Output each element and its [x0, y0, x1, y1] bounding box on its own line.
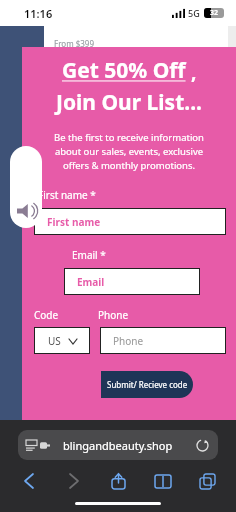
button[interactable]: Phone — [101, 328, 225, 353]
staticText: Get 50% Off — [62, 56, 186, 85]
button[interactable]: Email — [65, 269, 199, 294]
staticText: US — [48, 334, 61, 348]
staticText: Be the first to receive information abou… — [48, 131, 210, 172]
button[interactable]: Tabs — [194, 468, 220, 494]
button[interactable]: First name — [35, 209, 225, 234]
staticText: Phone — [113, 334, 144, 348]
staticText: Email * — [72, 248, 106, 262]
staticText: Join Our List... — [56, 88, 202, 117]
staticText: Email — [77, 275, 105, 289]
staticText: , — [186, 59, 197, 85]
button[interactable]: Share — [105, 468, 131, 494]
staticText: 5G — [188, 7, 200, 19]
button[interactable]: Back — [16, 468, 42, 494]
staticText: Phone — [98, 308, 129, 322]
staticText: 11:16 — [24, 6, 53, 21]
other: Page settings — [26, 440, 37, 451]
staticText: Code — [34, 308, 98, 322]
button[interactable]: Sound — [10, 146, 42, 228]
staticText: First name * — [38, 188, 96, 202]
staticText: blingandbeauty.shop — [63, 438, 173, 453]
button[interactable]: Reload — [194, 437, 210, 453]
staticText: First name — [47, 215, 101, 229]
button[interactable]: Forward — [61, 468, 87, 494]
button[interactable]: Bookmarks — [150, 468, 176, 494]
button[interactable]: blingandbeauty.shop — [18, 430, 218, 460]
staticText: 32 — [210, 8, 219, 18]
staticText: Submit/ Recieve code — [107, 379, 188, 390]
staticText: From $399 — [54, 38, 94, 49]
button[interactable]: US — [35, 328, 89, 353]
button[interactable]: Submit/ Recieve code — [101, 371, 193, 398]
